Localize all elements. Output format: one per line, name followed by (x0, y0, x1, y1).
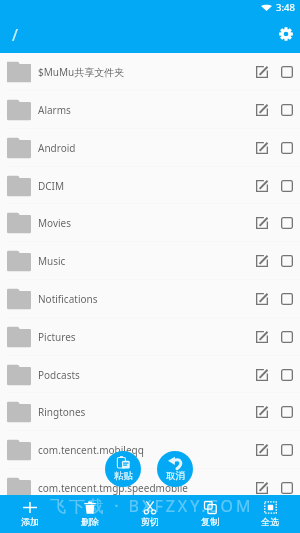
button[interactable]: 删除 (60, 495, 120, 533)
button[interactable]: com.tencent.tmgp.speedmobile (0, 469, 300, 507)
button[interactable]: Select (275, 170, 299, 202)
staticText: $MuMu共享文件夹 (38, 65, 250, 79)
button[interactable]: Notifications (0, 280, 300, 318)
staticText: Alarms (38, 103, 250, 117)
button[interactable]: Rename (250, 94, 274, 126)
button[interactable]: Rename (250, 472, 274, 504)
button[interactable]: Rename (250, 56, 274, 88)
button[interactable]: Select (275, 359, 299, 391)
staticText: Podcasts (38, 368, 250, 382)
button[interactable]: $MuMu共享文件夹 (0, 53, 300, 91)
staticText: 飞下载 · BXFZXY.COM (50, 495, 254, 517)
button[interactable]: Podcasts (0, 356, 300, 393)
button[interactable]: com.tencent.mobileqq (0, 431, 300, 469)
button[interactable]: Rename (250, 207, 274, 239)
staticText: 粘贴 (114, 470, 133, 482)
staticText: Notifications (38, 292, 250, 306)
button[interactable]: Rename (250, 170, 274, 202)
staticText: Android (38, 141, 250, 155)
button[interactable]: Select (275, 94, 299, 126)
staticText: Movies (38, 216, 250, 230)
staticText: Pictures (38, 330, 250, 344)
staticText: 剪切 (141, 516, 159, 527)
button[interactable]: Rename (250, 434, 274, 466)
staticText: / (12, 24, 18, 46)
staticText: Music (38, 254, 250, 268)
button[interactable]: Android (0, 129, 300, 167)
staticText: DCIM (38, 179, 250, 193)
button[interactable]: Select (275, 245, 299, 277)
button[interactable]: Paste (105, 451, 141, 487)
staticText: 复制 (201, 516, 219, 527)
button[interactable]: Movies (0, 204, 300, 242)
button[interactable]: Pictures (0, 318, 300, 356)
staticText: Ringtones (38, 405, 250, 419)
button[interactable]: Rename (250, 396, 274, 428)
button[interactable]: Music (0, 242, 300, 280)
button[interactable]: Select (275, 321, 299, 353)
button[interactable]: 全选 (240, 495, 300, 533)
button[interactable]: Ringtones (0, 393, 300, 431)
button[interactable]: Select (275, 472, 299, 504)
button[interactable]: 剪切 (120, 495, 180, 533)
button[interactable]: Alarms (0, 91, 300, 129)
button[interactable]: Cancel (157, 451, 193, 487)
button[interactable]: Settings (274, 23, 298, 47)
button[interactable]: Select (275, 132, 299, 164)
button[interactable]: Rename (250, 359, 274, 391)
button[interactable]: Select (275, 207, 299, 239)
staticText: 取消 (166, 470, 185, 482)
button[interactable]: Select (275, 56, 299, 88)
button[interactable]: Rename (250, 283, 274, 315)
staticText: 删除 (81, 516, 99, 527)
staticText: com.tencent.mobileqq (38, 443, 250, 457)
button[interactable]: Rename (250, 245, 274, 277)
button[interactable]: Select (275, 434, 299, 466)
staticText: 添加 (21, 516, 39, 527)
button[interactable]: 添加 (0, 495, 60, 533)
staticText: 全选 (261, 516, 279, 527)
button[interactable]: Rename (250, 321, 274, 353)
button[interactable]: Select (275, 396, 299, 428)
button[interactable]: Rename (250, 132, 274, 164)
button[interactable]: 复制 (180, 495, 240, 533)
button[interactable]: DCIM (0, 167, 300, 204)
staticText: 3:48 (276, 1, 295, 14)
button[interactable]: Select (275, 283, 299, 315)
staticText: com.tencent.tmgp.speedmobile (38, 481, 250, 495)
